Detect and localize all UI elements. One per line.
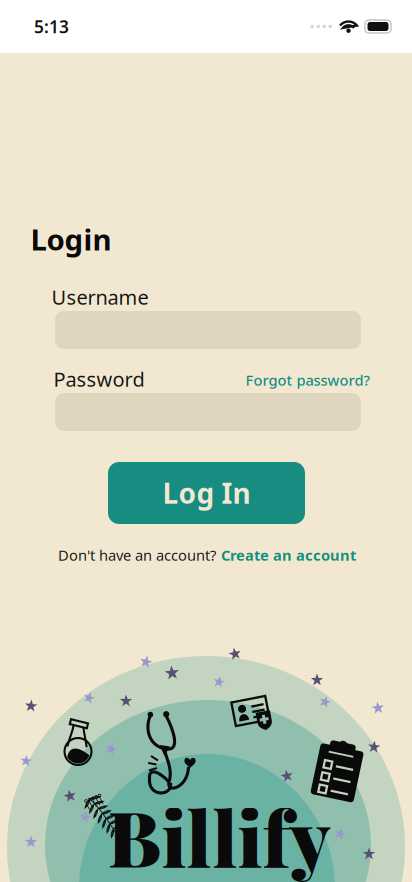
button[interactable]: Forgot password? [245,370,370,390]
staticText: Login [30,219,111,258]
button[interactable]: Create an account [221,545,356,565]
staticText: Username [51,284,148,310]
staticText: 5:13 [34,15,69,38]
staticText: Forgot password? [245,370,370,390]
staticText: Billify [107,785,330,882]
staticText: Create an account [221,545,356,565]
staticText: Password [53,366,144,392]
button[interactable]: Log In [108,462,305,524]
staticText: Don't have an account? [58,545,216,565]
staticText: Log In [162,474,250,512]
